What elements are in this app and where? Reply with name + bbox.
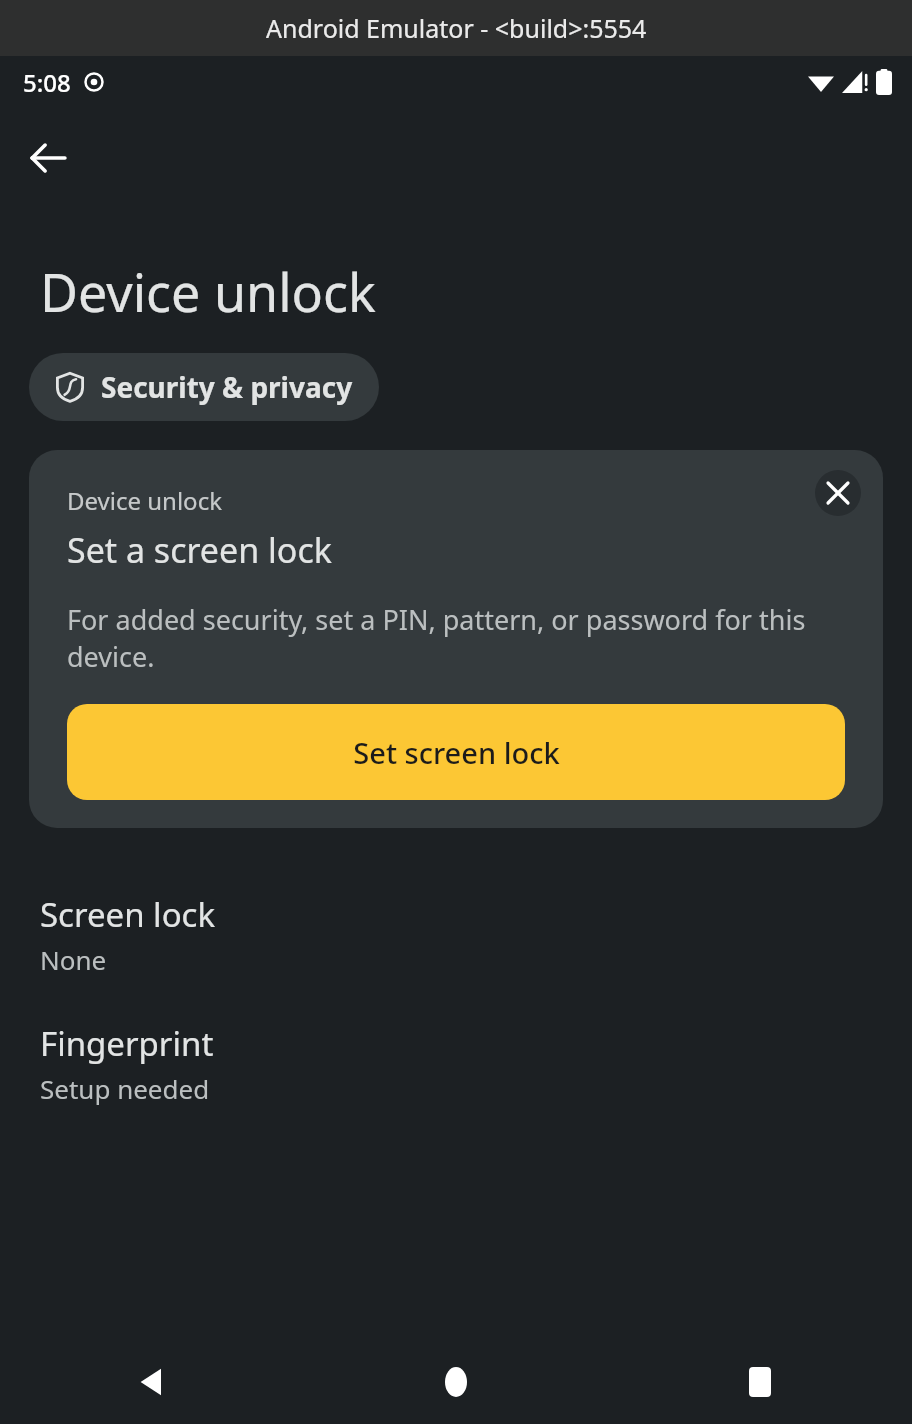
- staticText: Device unlock: [40, 256, 376, 327]
- button[interactable]: Back: [12, 122, 84, 194]
- staticText: Security & privacy: [101, 368, 353, 406]
- button[interactable]: Fingerprint: [0, 1019, 912, 1108]
- button[interactable]: Security & privacy: [29, 353, 379, 421]
- staticText: Set a screen lock: [67, 527, 332, 573]
- staticText: Screen lock: [40, 892, 216, 937]
- staticText: Setup needed: [40, 1071, 210, 1106]
- button[interactable]: Back: [0, 1340, 304, 1424]
- staticText: Android Emulator - <build>:5554: [266, 11, 647, 45]
- staticText: Device unlock: [67, 484, 222, 517]
- staticText: 5:08: [23, 66, 71, 99]
- button[interactable]: Recent apps: [608, 1340, 912, 1424]
- staticText: Fingerprint: [40, 1021, 214, 1066]
- staticText: For added security, set a PIN, pattern, …: [67, 601, 853, 675]
- button[interactable]: Screen lock: [0, 890, 912, 979]
- staticText: None: [40, 942, 107, 977]
- button[interactable]: Set screen lock: [67, 704, 845, 800]
- button[interactable]: Home: [304, 1340, 608, 1424]
- staticText: Set screen lock: [353, 733, 560, 772]
- button[interactable]: Dismiss: [815, 470, 861, 516]
